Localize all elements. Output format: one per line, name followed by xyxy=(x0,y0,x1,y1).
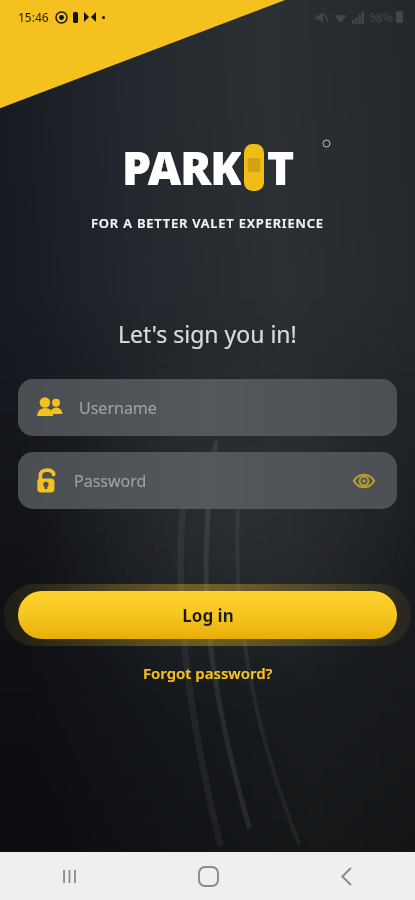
button[interactable]: Forgot password? xyxy=(133,659,283,687)
button[interactable]: Username xyxy=(18,379,397,436)
button[interactable]: Home xyxy=(139,852,277,900)
staticText: Username xyxy=(79,397,157,419)
staticText: T xyxy=(267,136,294,198)
button[interactable]: Password xyxy=(18,452,397,509)
staticText: Forgot password? xyxy=(143,663,273,683)
staticText: 98% xyxy=(369,9,393,25)
staticText: FOR A BETTER VALET EXPERIENCE xyxy=(91,214,324,232)
staticText: Password xyxy=(74,470,147,492)
staticText: Let's sign you in! xyxy=(118,318,297,349)
button[interactable]: Back xyxy=(277,852,415,900)
staticText: Log in xyxy=(182,604,234,627)
staticText: PARK xyxy=(122,136,241,198)
button[interactable]: Recent apps xyxy=(0,852,139,900)
button[interactable]: Show password xyxy=(347,464,381,498)
button[interactable]: Log in xyxy=(18,591,397,639)
staticText: 15:46 xyxy=(18,9,49,25)
